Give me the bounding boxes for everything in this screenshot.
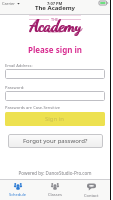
staticText: THE	[51, 17, 59, 22]
staticText: Carrier	[2, 1, 16, 6]
staticText: 7:07 PM	[47, 1, 63, 6]
button[interactable]: Forgot your password?	[8, 134, 103, 148]
staticText: ACADEMY	[48, 30, 63, 34]
staticText: Forgot your password?	[23, 137, 88, 145]
staticText: The Academy	[35, 4, 75, 12]
staticText: Academy	[30, 16, 82, 35]
staticText: Please sign in	[0, 44, 110, 55]
button[interactable]: Contact	[73, 180, 110, 200]
staticText: Academy	[30, 16, 82, 35]
button[interactable]: Classes	[36, 180, 73, 200]
staticText: Schedule	[9, 192, 27, 197]
staticText: Contact	[84, 193, 99, 198]
button[interactable]	[5, 69, 105, 79]
staticText: Academy	[29, 16, 81, 35]
staticText: Classes	[48, 192, 62, 197]
staticText: Passwords are Case-Sensitive	[5, 105, 61, 110]
button[interactable]: Schedule	[0, 180, 36, 200]
staticText: Password:	[5, 85, 25, 90]
staticText: Sign in	[45, 115, 65, 123]
staticText: Powered by: DanceStudio-Pro.com	[0, 170, 110, 176]
button[interactable]: Sign in	[5, 112, 105, 126]
staticText: Email Address:	[5, 63, 33, 68]
button[interactable]	[5, 91, 105, 101]
